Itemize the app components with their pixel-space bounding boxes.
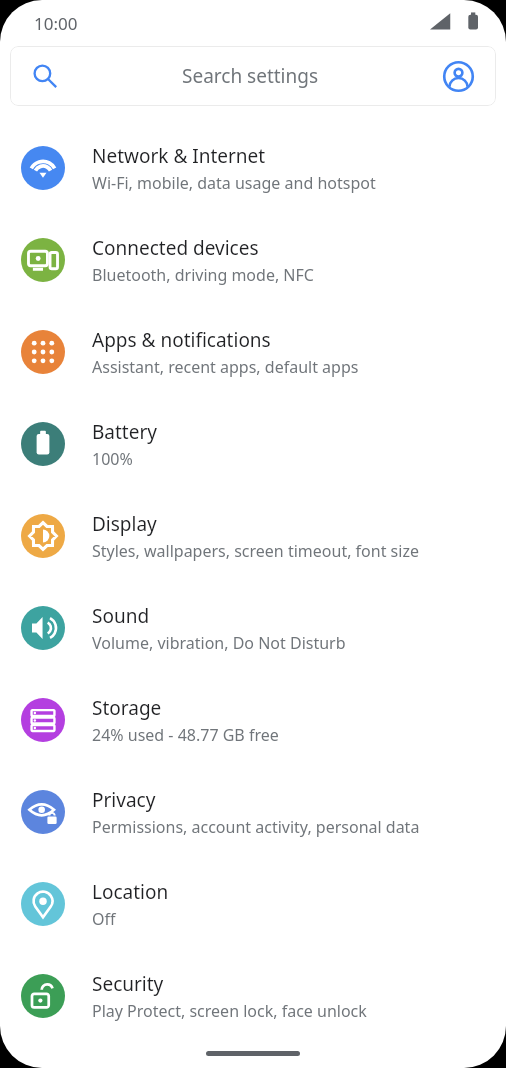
staticText: Bluetooth, driving mode, NFC <box>92 264 314 286</box>
button[interactable]: Sound <box>0 582 506 674</box>
staticText: Security <box>92 971 164 997</box>
staticText: Search settings <box>182 63 319 89</box>
staticText: Assistant, recent apps, default apps <box>92 356 359 378</box>
button[interactable]: Security <box>0 950 506 1042</box>
staticText: Privacy <box>92 787 156 813</box>
button[interactable]: Storage <box>0 674 506 766</box>
staticText: Permissions, account activity, personal … <box>92 816 420 838</box>
button[interactable]: Search settings <box>10 46 496 106</box>
staticText: 100% <box>92 448 133 470</box>
button[interactable]: Privacy <box>0 766 506 858</box>
staticText: Storage <box>92 695 162 721</box>
staticText: Play Protect, screen lock, face unlock <box>92 1000 367 1022</box>
staticText: Apps & notifications <box>92 327 271 353</box>
button[interactable]: Account <box>443 61 474 92</box>
staticText: Wi-Fi, mobile, data usage and hotspot <box>92 172 376 194</box>
staticText: Network & Internet <box>92 143 266 169</box>
button[interactable]: Network & Internet <box>0 122 506 214</box>
button[interactable]: Location <box>0 858 506 950</box>
staticText: Volume, vibration, Do Not Disturb <box>92 632 346 654</box>
staticText: Off <box>92 908 116 930</box>
staticText: 10:00 <box>34 12 78 35</box>
staticText: Sound <box>92 603 150 629</box>
staticText: 24% used - 48.77 GB free <box>92 724 279 746</box>
staticText: Connected devices <box>92 235 259 261</box>
button[interactable]: Display <box>0 490 506 582</box>
staticText: Battery <box>92 419 157 445</box>
button[interactable]: Battery <box>0 398 506 490</box>
staticText: Location <box>92 879 169 905</box>
staticText: Styles, wallpapers, screen timeout, font… <box>92 540 419 562</box>
button[interactable]: Connected devices <box>0 214 506 306</box>
button[interactable]: Apps & notifications <box>0 306 506 398</box>
staticText: Display <box>92 511 157 537</box>
